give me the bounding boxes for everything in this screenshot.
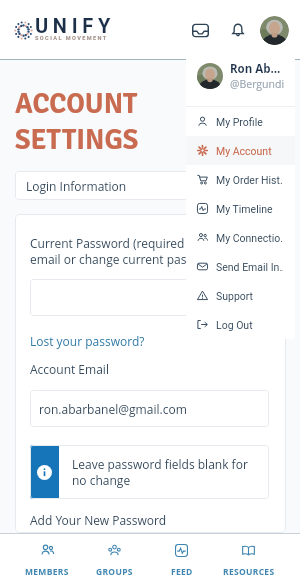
staticText: @Bergundi	[230, 77, 285, 91]
staticText: Send Email In…	[216, 261, 283, 273]
staticText: Current Password (required to update ema…	[30, 235, 269, 268]
button[interactable]: GROUPS	[81, 534, 148, 587]
button[interactable]: My Account	[186, 136, 295, 165]
button[interactable]: Ron Ab…	[197, 45, 295, 106]
staticText: Leave password fields blank for no chang…	[72, 456, 259, 489]
button[interactable]: RESOURCES	[215, 534, 282, 587]
staticText: GROUPS	[96, 566, 133, 578]
button[interactable]: Support	[186, 281, 295, 310]
staticText: My Profile	[216, 116, 263, 128]
staticText: SOCIAL MOVEMENT	[35, 35, 108, 42]
staticText: Account Email	[30, 361, 109, 377]
button[interactable]: Login Information	[15, 171, 286, 200]
staticText: UNIFY	[35, 14, 115, 37]
button[interactable]: FEED	[148, 534, 215, 587]
button[interactable]: MEMBERS	[13, 534, 81, 587]
staticText: ron.abarbanel@gmail.com	[39, 401, 187, 417]
staticText: RESOURCES	[223, 566, 275, 578]
staticText: FEED	[171, 566, 193, 578]
button[interactable]	[30, 279, 269, 316]
staticText: Login Information	[26, 178, 127, 194]
button[interactable]: My Profile	[186, 107, 295, 136]
staticText: Ron Ab…	[230, 61, 281, 77]
staticText: Support	[216, 290, 254, 302]
button[interactable]: Inbox	[185, 15, 215, 45]
button[interactable]: My Connectio…	[186, 223, 295, 252]
staticText: ACCOUNT SETTINGS	[15, 87, 139, 158]
staticText: My Timeline	[216, 203, 273, 215]
button[interactable]: Account menu	[260, 16, 289, 45]
button[interactable]: Log Out	[186, 310, 295, 339]
button[interactable]: ron.abarbanel@gmail.com	[30, 390, 269, 427]
button[interactable]: My Timeline	[186, 194, 295, 223]
staticText: Add Your New Password	[30, 512, 167, 528]
staticText: My Order Hist…	[216, 174, 283, 186]
staticText: My Connectio…	[216, 232, 283, 244]
button[interactable]: My Order Hist…	[186, 165, 295, 194]
staticText: MEMBERS	[25, 566, 69, 578]
staticText: Log Out	[216, 319, 253, 331]
button[interactable]: Send Email In…	[186, 252, 295, 281]
button[interactable]: Lost your password?	[30, 333, 145, 349]
button[interactable]: Notifications	[223, 15, 253, 45]
staticText: My Account	[216, 145, 272, 157]
